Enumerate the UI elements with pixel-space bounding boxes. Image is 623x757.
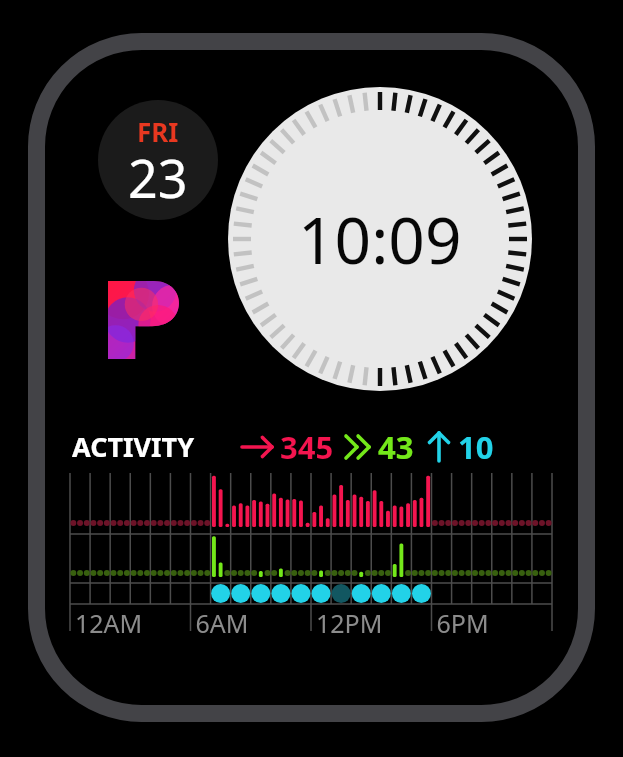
button[interactable]: Date Friday 23 — [97, 99, 219, 221]
button[interactable]: Activity chart — [66, 424, 558, 636]
button[interactable]: Clock 10:09 — [228, 87, 533, 392]
button[interactable]: Pandora — [104, 277, 190, 363]
